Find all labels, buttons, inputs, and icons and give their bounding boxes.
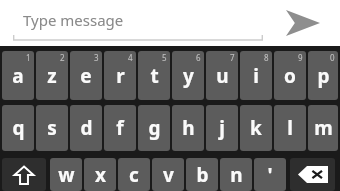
staticText: x <box>95 162 106 188</box>
staticText: c <box>129 162 139 188</box>
button[interactable]: k <box>240 105 272 151</box>
staticText: 6 <box>196 52 201 63</box>
staticText: a <box>12 63 24 89</box>
button[interactable]: w <box>50 158 82 191</box>
button[interactable]: Type message <box>13 6 263 40</box>
button[interactable]: q <box>2 105 34 151</box>
button[interactable]: m <box>308 105 338 151</box>
button[interactable]: v <box>152 158 184 191</box>
staticText: b <box>196 162 209 188</box>
staticText: n <box>230 162 243 188</box>
button[interactable]: e <box>70 51 102 100</box>
button[interactable]: u <box>206 51 238 100</box>
button[interactable]: Send <box>280 3 326 43</box>
button[interactable]: j <box>206 105 238 151</box>
staticText: j <box>219 115 225 141</box>
staticText: s <box>47 115 57 141</box>
button[interactable]: f <box>104 105 136 151</box>
button[interactable]: n <box>220 158 252 191</box>
button[interactable]: a <box>2 51 34 100</box>
staticText: 0 <box>330 52 335 63</box>
staticText: d <box>80 115 93 141</box>
staticText: 9 <box>298 52 303 63</box>
button[interactable]: d <box>70 105 102 151</box>
staticText: k <box>250 115 262 141</box>
button[interactable]: ' <box>254 158 286 191</box>
button[interactable]: p <box>308 51 338 100</box>
staticText: u <box>216 63 229 89</box>
button[interactable]: l <box>274 105 306 151</box>
staticText: 1 <box>26 52 31 63</box>
staticText: f <box>116 115 124 141</box>
staticText: m <box>314 115 333 141</box>
staticText: o <box>284 63 296 89</box>
staticText: ' <box>267 162 273 188</box>
staticText: v <box>163 162 174 188</box>
staticText: q <box>12 115 25 141</box>
staticText: z <box>47 63 57 89</box>
staticText: h <box>182 115 195 141</box>
button[interactable]: g <box>138 105 170 151</box>
button[interactable]: Shift <box>2 158 46 191</box>
button[interactable]: h <box>172 105 204 151</box>
staticText: 7 <box>230 52 235 63</box>
staticText: t <box>150 63 159 89</box>
button[interactable]: t <box>138 51 170 100</box>
staticText: r <box>116 63 125 89</box>
staticText: i <box>253 63 259 89</box>
button[interactable]: b <box>186 158 218 191</box>
staticText: 3 <box>94 52 99 63</box>
staticText: e <box>80 63 92 89</box>
staticText: 5 <box>162 52 167 63</box>
staticText: 8 <box>264 52 269 63</box>
button[interactable]: z <box>36 51 68 100</box>
staticText: g <box>148 115 161 141</box>
button[interactable]: i <box>240 51 272 100</box>
button[interactable]: r <box>104 51 136 100</box>
staticText: p <box>317 63 330 89</box>
button[interactable]: c <box>118 158 150 191</box>
button[interactable]: s <box>36 105 68 151</box>
staticText: w <box>58 162 75 188</box>
button[interactable]: x <box>84 158 116 191</box>
staticText: 2 <box>60 52 65 63</box>
staticText: l <box>287 115 293 141</box>
button[interactable]: Backspace <box>290 158 335 191</box>
staticText: y <box>183 63 194 89</box>
button[interactable]: y <box>172 51 204 100</box>
button[interactable]: o <box>274 51 306 100</box>
staticText: 4 <box>128 52 133 63</box>
staticText: Type message <box>23 10 124 30</box>
